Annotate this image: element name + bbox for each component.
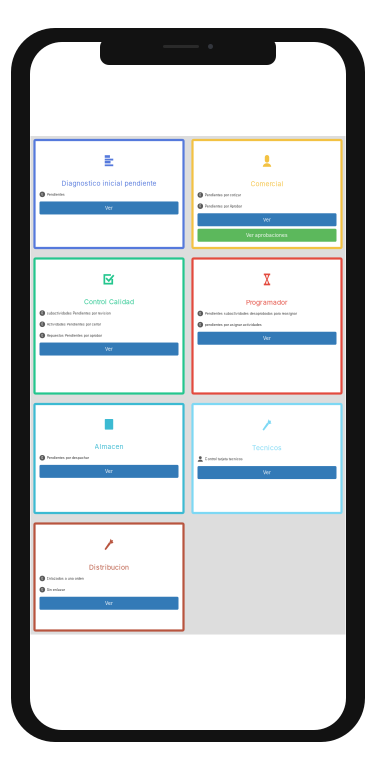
staticText: subactividades Pendientes por revision <box>47 311 111 315</box>
button[interactable]: Ver <box>39 343 178 356</box>
staticText: Pendientes <box>47 192 65 197</box>
staticText: Pendientes por cotizar <box>205 193 241 197</box>
staticText: 0 <box>41 192 43 196</box>
staticText: 0 <box>199 311 201 315</box>
button[interactable]: Ver <box>39 201 178 214</box>
button[interactable]: Ver aprobaciones <box>197 229 336 242</box>
button[interactable]: Control Calidad <box>34 258 183 393</box>
staticText: 0 <box>199 323 201 327</box>
staticText: 0 <box>41 576 43 580</box>
button[interactable]: Tecnicos <box>192 404 341 513</box>
button[interactable]: Ver <box>39 597 178 610</box>
staticText: Ver <box>105 346 113 352</box>
staticText: pendientes por asignar actividades <box>205 322 262 327</box>
button[interactable]: Programador <box>192 258 341 393</box>
staticText: Ver aprobaciones <box>246 232 288 238</box>
staticText: Pendientes por Aprobar <box>205 204 242 208</box>
staticText: Comercial <box>250 180 283 188</box>
staticText: Distribucion <box>89 563 129 571</box>
button[interactable]: Diagnostico inicial pendiente <box>34 140 183 248</box>
staticText: 0 <box>41 333 43 337</box>
staticText: Ver <box>263 470 271 475</box>
staticText: 0 <box>199 204 201 208</box>
button[interactable]: Ver <box>197 332 336 345</box>
staticText: 0 <box>41 322 43 326</box>
staticText: Ver <box>105 600 113 606</box>
staticText: Ver <box>263 335 271 341</box>
button[interactable]: Distribucion <box>34 523 183 630</box>
staticText: Ver <box>105 205 113 211</box>
staticText: 0 <box>199 193 201 197</box>
staticText: Repuestos Pendientes por aprobar <box>47 333 102 338</box>
button[interactable]: Ver <box>39 465 178 478</box>
staticText: Tecnicos <box>252 444 282 452</box>
staticText: Actividades Pendientes por cerrar <box>47 322 101 326</box>
staticText: 0 <box>41 456 43 460</box>
staticText: Pendientes por despachar <box>47 456 89 460</box>
staticText: Enlazados a una orden <box>47 576 84 581</box>
staticText: Programador <box>246 298 288 306</box>
button[interactable]: Almacen <box>34 404 183 513</box>
staticText: Ver <box>105 468 113 474</box>
staticText: 0 <box>41 588 43 592</box>
staticText: Diagnostico inicial pendiente <box>61 179 156 187</box>
staticText: Control tarjeta tecnicos <box>205 457 243 461</box>
staticText: 0 <box>41 311 43 315</box>
button[interactable]: Ver <box>197 213 336 226</box>
staticText: Almacen <box>94 443 123 451</box>
staticText: Sin enlazar <box>47 587 65 592</box>
staticText: Control Calidad <box>84 298 134 306</box>
button[interactable]: Ver <box>197 466 336 479</box>
staticText: Ver <box>263 217 271 223</box>
staticText: Pendientes subactividades desaprobadas p… <box>205 311 297 316</box>
button[interactable]: Comercial <box>192 140 341 248</box>
